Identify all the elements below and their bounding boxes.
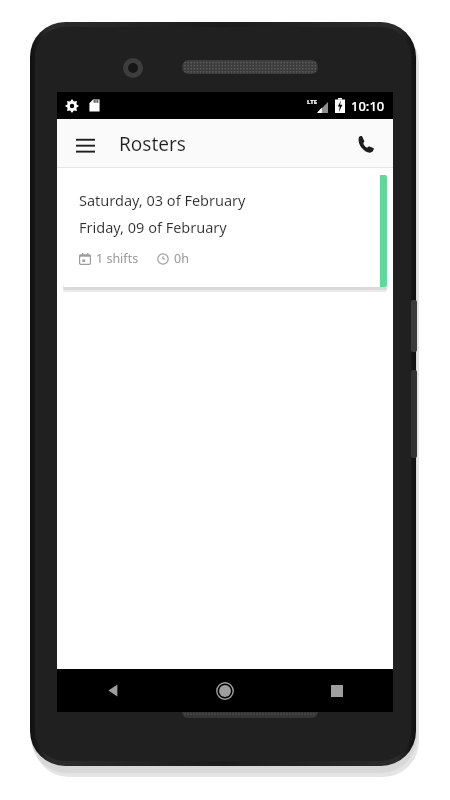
staticText: 0h bbox=[174, 250, 189, 267]
button[interactable]: Call bbox=[345, 124, 385, 164]
staticText: 10:10 bbox=[351, 97, 385, 115]
staticText: Rosters bbox=[119, 131, 186, 157]
button[interactable]: Recent apps bbox=[281, 669, 393, 712]
button[interactable]: Back bbox=[57, 669, 169, 712]
button[interactable]: Home bbox=[169, 669, 281, 712]
staticText: LTE bbox=[307, 98, 318, 106]
button[interactable]: Saturday, 03 of February bbox=[63, 175, 387, 287]
staticText: Friday, 09 of February bbox=[79, 217, 227, 237]
staticText: Saturday, 03 of February bbox=[79, 190, 246, 210]
button[interactable]: Open navigation menu bbox=[65, 124, 105, 164]
staticText: 1 shifts bbox=[96, 250, 139, 267]
